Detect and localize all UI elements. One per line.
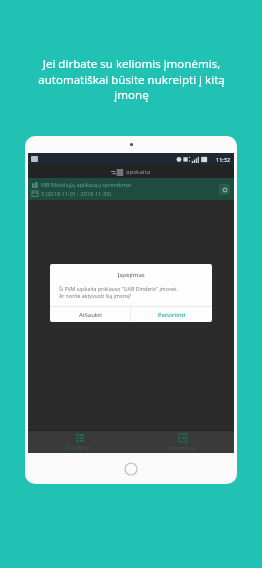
button[interactable]: Peržiūrėt	[28, 431, 131, 453]
staticText: Ši PVM sąskaita priklauso "UAB Dinderis"…	[59, 285, 203, 299]
button[interactable]: Nustatymai	[219, 184, 230, 195]
staticText: 3 (2018-11-01 - 2018-11-30)	[41, 190, 111, 197]
staticText: MB Mobiliųjų aplikacijų sprendimai	[41, 181, 132, 188]
staticText: Peržiūrėt	[68, 444, 91, 451]
button[interactable]: MB Mobiliųjų aplikacijų sprendimai	[28, 178, 234, 200]
staticText: Eksportuoti	[168, 444, 197, 451]
staticText: Atšaukti	[79, 311, 102, 319]
staticText: Jei dirbate su keliomis įmonėmis, automa…	[38, 56, 225, 102]
button[interactable]: Patvirtinti	[131, 307, 212, 322]
button[interactable]: Eksportuoti	[131, 431, 234, 453]
button[interactable]: Atšaukti	[50, 307, 130, 322]
staticText: apskaita	[126, 168, 151, 176]
staticText: 11:32	[216, 156, 231, 163]
staticText: Patvirtinti	[158, 311, 186, 319]
staticText: Įspėjimas	[50, 271, 212, 279]
